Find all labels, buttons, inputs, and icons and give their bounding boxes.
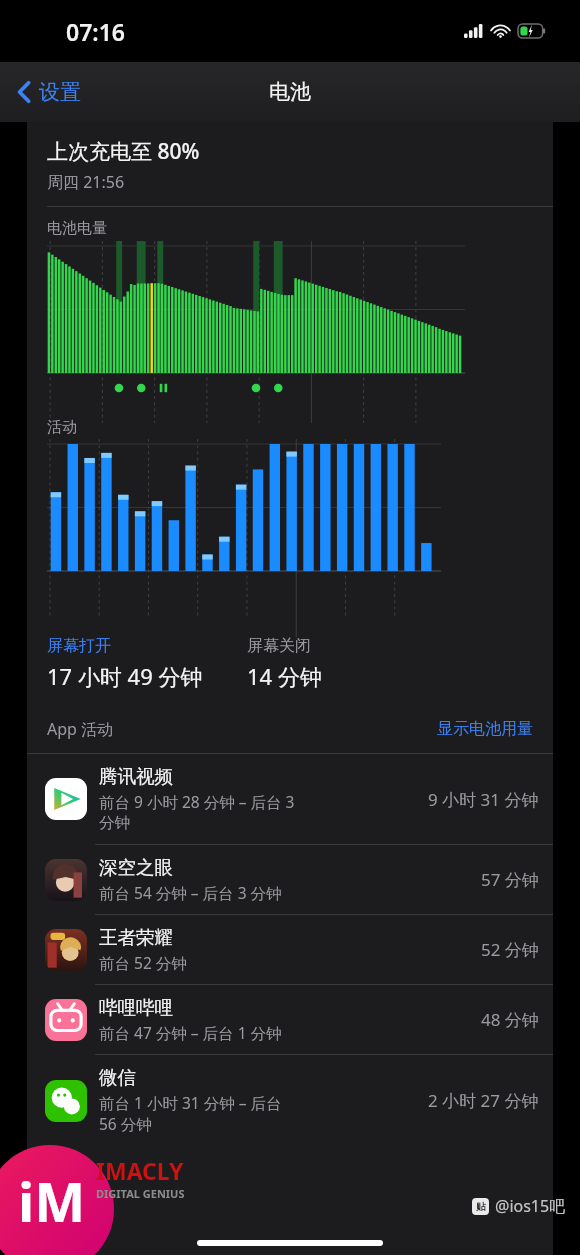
button[interactable]: 深空之眼 [27,845,553,914]
staticText: @ios15吧 [495,1195,566,1217]
staticText: 腾讯视频 [99,765,173,788]
staticText: 显示电池用量 [437,719,533,739]
staticText: 设置 [39,79,81,105]
other: 王者荣耀 [45,929,87,971]
staticText: 2 小时 27 分钟 [428,1089,539,1112]
other: 深空之眼 [45,859,87,901]
staticText: 48 分钟 [481,1008,539,1031]
staticText: 周四 21:56 [47,171,125,193]
staticText: 贴 [476,1200,486,1213]
staticText: 王者荣耀 [99,926,173,949]
staticText: iM [18,1164,86,1238]
button[interactable]: 腾讯视频 [27,754,553,844]
staticText: 52 分钟 [481,938,539,961]
button[interactable]: 设置 [12,71,87,113]
other: 微信 [45,1080,87,1122]
staticText: 电池电量 [47,219,107,238]
staticText: DIGITAL GENIUS [96,1186,185,1201]
staticText: 前台 1 小时 31 分钟 – 后台 56 分钟 [99,1092,282,1135]
staticText: 前台 47 分钟 – 后台 1 分钟 [99,1022,282,1043]
staticText: 屏幕关闭 [247,636,311,656]
staticText: 上次充电至 80% [47,137,200,166]
button[interactable]: 微信 [27,1055,553,1146]
staticText: 哔哩哔哩 [99,996,173,1019]
button[interactable]: 王者荣耀 [27,915,553,984]
staticText: 57 分钟 [481,868,539,891]
staticText: 前台 9 小时 28 分钟 – 后台 3 分钟 [99,791,295,833]
staticText: 17 小时 49 分钟 [47,661,203,691]
staticText: 14 分钟 [247,661,322,691]
other: 腾讯视频 [45,778,87,820]
staticText: 活动 [47,418,77,437]
staticText: 深空之眼 [99,856,173,879]
staticText: 微信 [99,1066,136,1089]
staticText: App 活动 [47,718,114,740]
staticText: 07:16 [66,16,125,47]
staticText: 屏幕打开 [47,636,111,656]
button[interactable]: 哔哩哔哩 [27,985,553,1054]
other: 哔哩哔哩 [45,999,87,1041]
staticText: 9 小时 31 分钟 [428,788,539,811]
staticText: 电池 [269,79,311,105]
staticText: IMACLY [96,1155,184,1186]
button[interactable]: 显示电池用量 [433,715,537,743]
staticText: 前台 54 分钟 – 后台 3 分钟 [99,882,282,903]
staticText: 前台 52 分钟 [99,952,187,973]
